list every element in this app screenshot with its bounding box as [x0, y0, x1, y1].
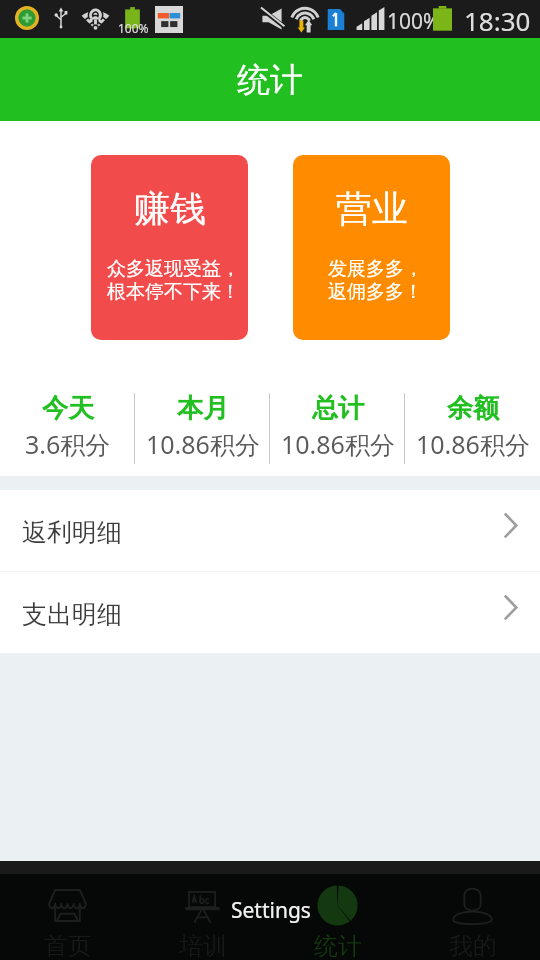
button[interactable]: 我的	[405, 861, 540, 960]
staticText: 100%	[118, 20, 149, 36]
staticText: 支出明细	[22, 599, 122, 630]
staticText: 营业	[336, 186, 408, 231]
staticText: 统计	[237, 59, 303, 101]
staticText: 培训	[179, 931, 227, 960]
staticText: 统计	[314, 931, 362, 960]
button[interactable]: 统计	[270, 861, 405, 960]
staticText: 10.86积分	[146, 427, 260, 461]
staticText: 首页	[44, 931, 92, 960]
staticText: 总计	[312, 392, 364, 425]
staticText: 发展多多， 返佣多多！	[328, 257, 423, 304]
staticText: 众多返现受益， 根本停不下来！	[107, 257, 240, 304]
button[interactable]: 营业	[293, 155, 450, 340]
staticText: 余额	[447, 392, 499, 425]
button[interactable]: 返利明细	[0, 490, 540, 571]
staticText: 18:30	[464, 3, 531, 38]
staticText: 返利明细	[22, 517, 122, 548]
button[interactable]: 培训	[135, 861, 270, 960]
staticText: 3.6积分	[25, 427, 111, 461]
button[interactable]: 赚钱	[91, 155, 248, 340]
staticText: Settings	[231, 896, 311, 925]
staticText: 我的	[449, 931, 497, 960]
staticText: 10.86积分	[416, 427, 530, 461]
staticText: 今天	[42, 392, 94, 425]
staticText: 赚钱	[134, 186, 206, 231]
staticText: 100%	[387, 7, 441, 36]
staticText: 本月	[177, 392, 229, 425]
staticText: 10.86积分	[281, 427, 395, 461]
button[interactable]: 支出明细	[0, 572, 540, 653]
button[interactable]: 首页	[0, 861, 135, 960]
